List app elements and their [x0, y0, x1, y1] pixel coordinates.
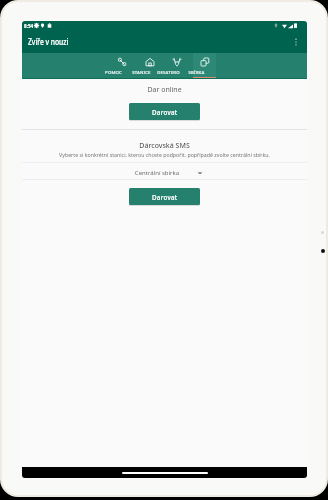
staticText: 8:54 — [24, 23, 34, 29]
staticText: Vyberte si konkrétní stanici, kterou chc… — [30, 151, 299, 158]
staticText: Centrální sbírka — [134, 169, 180, 177]
button[interactable]: POMOC — [110, 53, 133, 79]
button[interactable]: Darovat — [129, 188, 200, 205]
staticText: Darovat — [152, 108, 178, 116]
staticText: STANICE — [130, 69, 153, 75]
staticText: Dar online — [22, 85, 307, 95]
button[interactable]: Centrální sbírka — [119, 167, 203, 178]
button[interactable]: More options — [289, 35, 303, 49]
staticText: Zvíře v nouzi — [28, 36, 69, 47]
staticText: SBÍRKA — [185, 69, 208, 75]
staticText: Darovat — [152, 193, 178, 201]
staticText: DESATERO — [157, 69, 180, 75]
button[interactable]: SBÍRKA — [193, 53, 216, 79]
button[interactable]: DESATERO — [165, 53, 188, 79]
button[interactable]: Darovat — [129, 103, 200, 120]
staticText: POMOC — [102, 69, 125, 75]
button[interactable]: STANICE — [138, 53, 161, 79]
staticText: Dárcovská SMS — [22, 141, 307, 151]
